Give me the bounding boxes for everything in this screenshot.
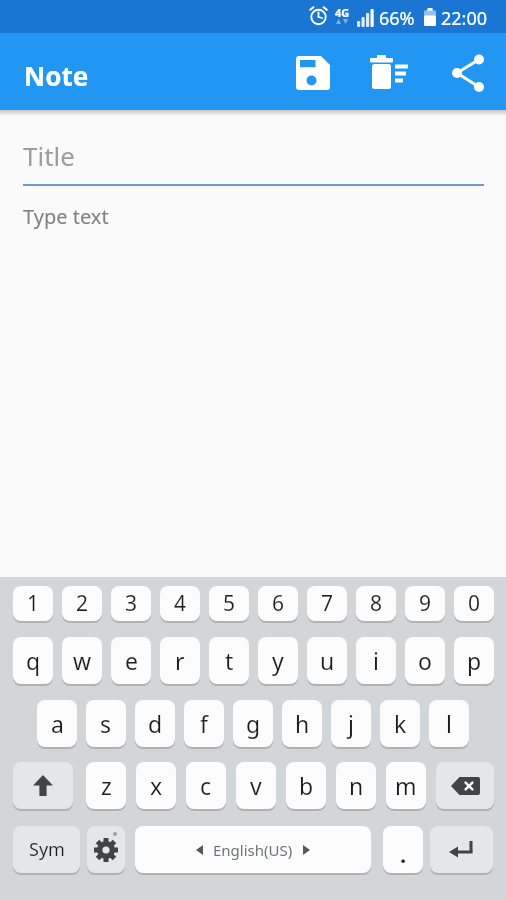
- staticText: i: [373, 645, 379, 676]
- button[interactable]: 1: [13, 586, 53, 621]
- staticText: f: [200, 708, 208, 739]
- button[interactable]: 5: [209, 586, 249, 621]
- button[interactable]: e: [111, 637, 151, 684]
- staticText: 1: [27, 589, 40, 618]
- staticText: Type text: [23, 203, 109, 230]
- staticText: m: [395, 770, 417, 801]
- staticText: 4: [174, 589, 187, 618]
- staticText: q: [26, 645, 41, 676]
- button[interactable]: 7: [307, 586, 347, 621]
- button[interactable]: c: [186, 762, 226, 809]
- button[interactable]: 9: [405, 586, 445, 621]
- staticText: o: [418, 645, 432, 676]
- button[interactable]: 4: [160, 586, 200, 621]
- button[interactable]: z: [86, 762, 126, 809]
- button[interactable]: u: [307, 637, 347, 684]
- staticText: 2: [76, 589, 89, 618]
- staticText: 6: [272, 589, 285, 618]
- button[interactable]: [436, 762, 494, 809]
- staticText: d: [148, 708, 163, 739]
- staticText: s: [100, 708, 112, 739]
- button[interactable]: [288, 48, 338, 98]
- staticText: p: [467, 645, 482, 676]
- staticText: Title: [23, 138, 75, 173]
- staticText: l: [446, 708, 452, 739]
- staticText: v: [250, 770, 262, 801]
- button[interactable]: s: [86, 700, 126, 747]
- button[interactable]: 3: [111, 586, 151, 621]
- button[interactable]: g: [233, 700, 273, 747]
- staticText: Note: [24, 58, 89, 93]
- button[interactable]: v: [236, 762, 276, 809]
- staticText: 4G: [335, 5, 350, 20]
- staticText: w: [73, 645, 92, 676]
- button[interactable]: [13, 762, 73, 809]
- button[interactable]: w: [62, 637, 102, 684]
- button[interactable]: l: [429, 700, 469, 747]
- button[interactable]: p: [454, 637, 494, 684]
- button[interactable]: Sym: [13, 826, 80, 873]
- staticText: a: [51, 708, 64, 739]
- button[interactable]: .: [383, 826, 423, 873]
- staticText: u: [320, 645, 335, 676]
- staticText: g: [246, 708, 261, 739]
- staticText: k: [394, 708, 407, 739]
- button[interactable]: m: [386, 762, 426, 809]
- button[interactable]: English(US): [135, 826, 371, 873]
- button[interactable]: j: [331, 700, 371, 747]
- staticText: r: [175, 645, 185, 676]
- button[interactable]: [364, 48, 414, 98]
- button[interactable]: d: [135, 700, 175, 747]
- staticText: n: [349, 770, 364, 801]
- staticText: z: [101, 770, 112, 801]
- button[interactable]: 6: [258, 586, 298, 621]
- button[interactable]: x: [136, 762, 176, 809]
- button[interactable]: [87, 826, 125, 873]
- staticText: 0: [468, 589, 481, 618]
- button[interactable]: 0: [454, 586, 494, 621]
- staticText: English(US): [213, 840, 293, 860]
- staticText: 8: [370, 589, 383, 618]
- staticText: 5: [223, 589, 236, 618]
- button[interactable]: q: [13, 637, 53, 684]
- staticText: 7: [321, 589, 334, 618]
- staticText: 9: [419, 589, 432, 618]
- button[interactable]: h: [282, 700, 322, 747]
- button[interactable]: k: [380, 700, 420, 747]
- button[interactable]: a: [37, 700, 77, 747]
- staticText: b: [299, 770, 314, 801]
- staticText: x: [150, 770, 163, 801]
- button[interactable]: [444, 48, 494, 98]
- button[interactable]: 2: [62, 586, 102, 621]
- staticText: t: [225, 645, 234, 676]
- staticText: .: [400, 839, 407, 869]
- button[interactable]: i: [356, 637, 396, 684]
- staticText: Sym: [29, 837, 65, 862]
- staticText: 66%: [379, 6, 415, 31]
- button[interactable]: o: [405, 637, 445, 684]
- button[interactable]: t: [209, 637, 249, 684]
- staticText: 3: [125, 589, 138, 618]
- staticText: c: [200, 770, 212, 801]
- button[interactable]: [430, 826, 493, 873]
- button[interactable]: n: [336, 762, 376, 809]
- button[interactable]: b: [286, 762, 326, 809]
- button[interactable]: r: [160, 637, 200, 684]
- staticText: 22:00: [441, 6, 488, 31]
- button[interactable]: 8: [356, 586, 396, 621]
- staticText: j: [348, 708, 354, 739]
- button[interactable]: f: [184, 700, 224, 747]
- staticText: h: [295, 708, 310, 739]
- staticText: y: [272, 645, 284, 676]
- button[interactable]: y: [258, 637, 298, 684]
- staticText: e: [125, 645, 138, 676]
